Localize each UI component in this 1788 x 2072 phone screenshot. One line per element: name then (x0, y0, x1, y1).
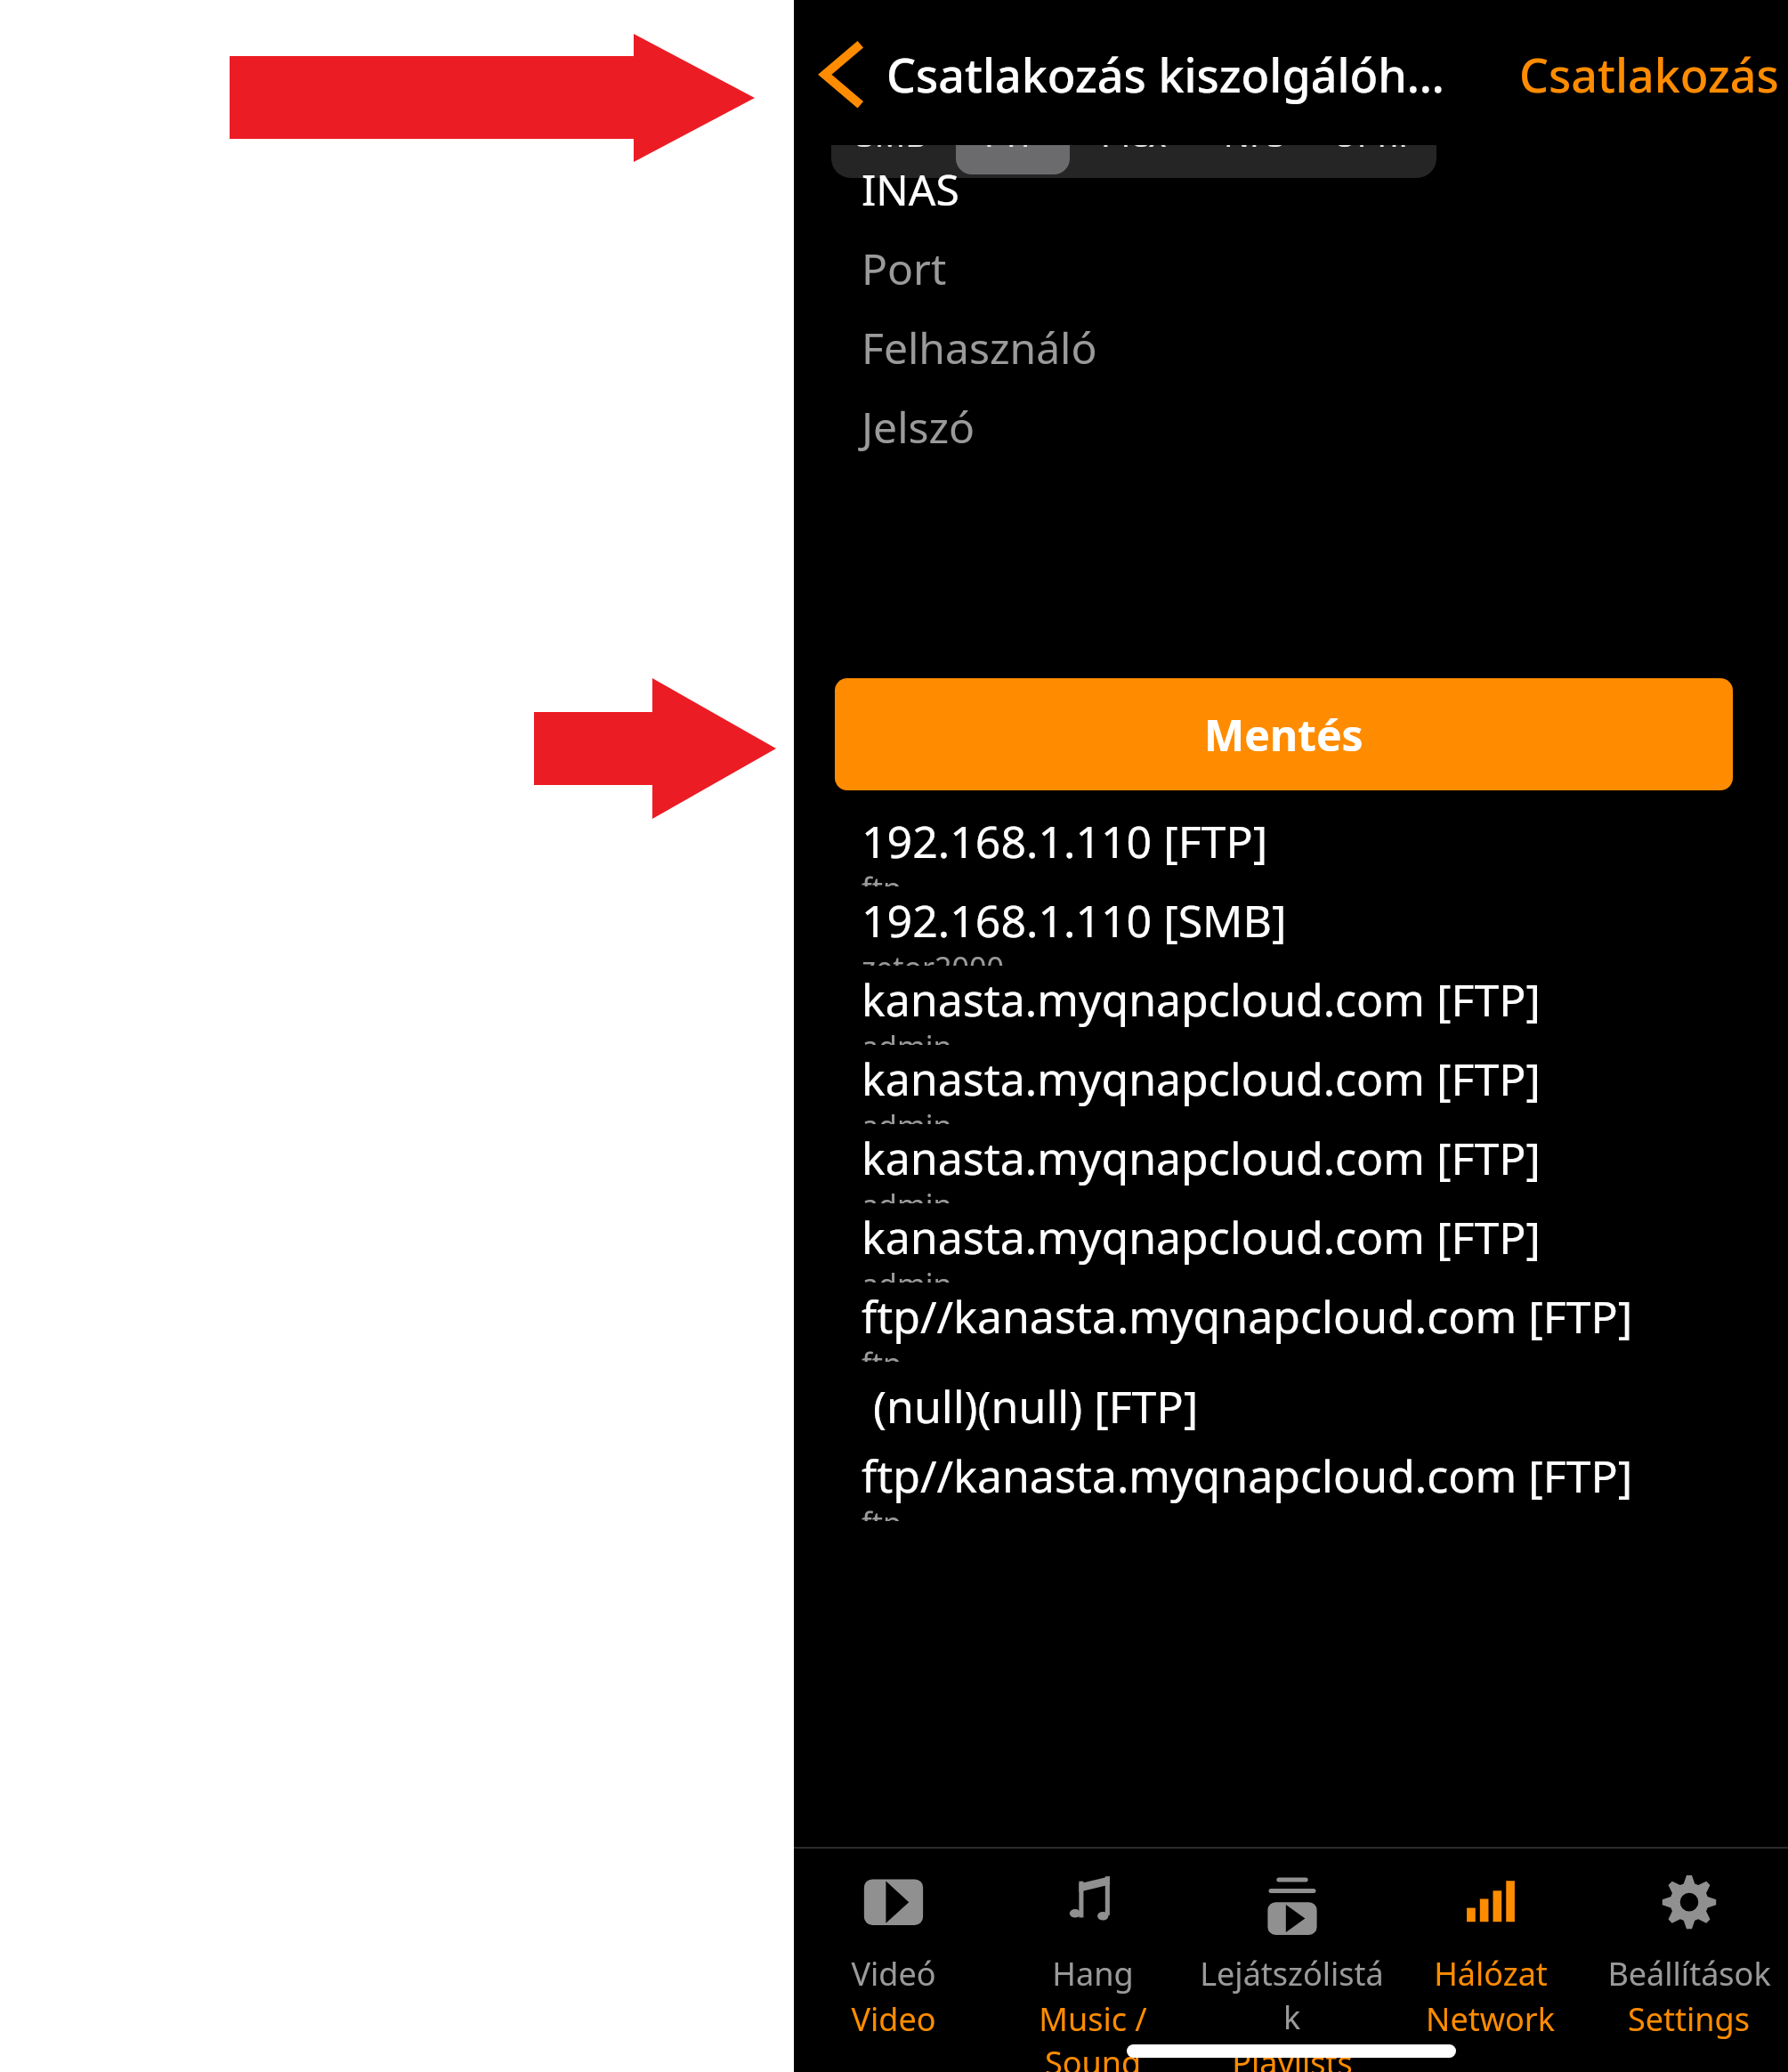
staticText: kanasta.myqnapcloud.com [FTP] (862, 1207, 1541, 1267)
button[interactable]: UPnP (1319, 93, 1433, 174)
staticText: zetor2000 (862, 947, 1004, 966)
staticText: kanasta.myqnapcloud.com [FTP] (862, 1128, 1541, 1188)
button[interactable]: kanasta.myqnapcloud.com [FTP] (794, 964, 1788, 1043)
staticText: ftp//kanasta.myqnapcloud.com [FTP] (862, 1286, 1633, 1347)
button[interactable]: kanasta.myqnapcloud.com [FTP] (794, 1043, 1788, 1122)
staticText: admin (862, 1185, 952, 1203)
staticText: INAS (862, 160, 959, 218)
button[interactable]: Back (796, 34, 874, 112)
button[interactable]: Mentés (835, 678, 1733, 790)
button[interactable]: Videó (794, 1856, 993, 2039)
staticText: ftp//kanasta.myqnapcloud.com [FTP] (862, 1445, 1633, 1506)
staticText: ftp (862, 1502, 902, 1521)
staticText: Playlists (1232, 2041, 1353, 2072)
staticText: Beállítások (1607, 1952, 1771, 1995)
staticText: admin (862, 1026, 952, 1045)
staticText: NFS (1224, 110, 1286, 157)
staticText: Csatlakozás (1519, 43, 1779, 106)
staticText: Felhasználó (862, 319, 1097, 376)
button[interactable]: ftp//kanasta.myqnapcloud.com [FTP] (794, 1281, 1788, 1360)
staticText: Port (862, 239, 947, 297)
button[interactable]: Csatlakozás (1510, 36, 1788, 113)
staticText: ftp (862, 1343, 902, 1362)
button[interactable]: Hang (993, 1856, 1193, 2072)
button[interactable]: kanasta.myqnapcloud.com [FTP] (794, 1122, 1788, 1202)
staticText: Videó (851, 1952, 936, 1995)
staticText: FTP (984, 110, 1041, 157)
staticText: Music / Sound (993, 1997, 1193, 2072)
staticText: Video (851, 1997, 936, 2041)
staticText: admin (862, 1105, 952, 1124)
staticText: SMB (856, 110, 928, 157)
button[interactable]: SMB (835, 93, 949, 174)
staticText: Settings (1628, 1997, 1750, 2041)
button[interactable]: (null)(null) [FTP] (794, 1371, 1788, 1460)
staticText: UPnP (1332, 110, 1420, 157)
staticText: Plex (1101, 110, 1167, 157)
staticText: Lejátszólisták (1193, 1952, 1391, 2039)
staticText: Mentés (1204, 706, 1363, 764)
staticText: 192.168.1.110 [SMB] (862, 890, 1287, 951)
button[interactable]: NFS (1198, 93, 1312, 174)
staticText: kanasta.myqnapcloud.com [FTP] (862, 1048, 1541, 1109)
button[interactable]: INAS (829, 150, 1788, 229)
staticText: Network (1426, 1997, 1555, 2041)
button[interactable]: Port (829, 229, 1788, 308)
button[interactable]: Plex (1077, 93, 1191, 174)
staticText: (null)(null) [FTP] (862, 1376, 1199, 1437)
button[interactable]: Lejátszólisták (1193, 1856, 1391, 2072)
button[interactable]: 192.168.1.110 [SMB] (794, 885, 1788, 964)
staticText: Jelszó (862, 398, 975, 456)
staticText: Hálózat (1434, 1952, 1548, 1995)
button[interactable]: Beállítások (1590, 1856, 1788, 2039)
button[interactable]: ftp//kanasta.myqnapcloud.com [FTP] (794, 1440, 1788, 1519)
staticText: Hang (1052, 1952, 1134, 1995)
button[interactable]: Jelszó (829, 387, 1788, 466)
staticText: kanasta.myqnapcloud.com [FTP] (862, 969, 1541, 1030)
button[interactable]: FTP (956, 93, 1070, 174)
button[interactable]: Felhasználó (829, 308, 1788, 387)
button[interactable]: 192.168.1.110 [FTP] (794, 805, 1788, 885)
button[interactable]: kanasta.myqnapcloud.com [FTP] (794, 1202, 1788, 1281)
button[interactable]: Hálózat (1391, 1856, 1590, 2039)
staticText: 192.168.1.110 [FTP] (862, 811, 1268, 871)
staticText: ftp (862, 868, 902, 886)
staticText: admin (862, 1264, 952, 1283)
staticText: Csatlakozás kiszolgálóh… (886, 43, 1444, 106)
